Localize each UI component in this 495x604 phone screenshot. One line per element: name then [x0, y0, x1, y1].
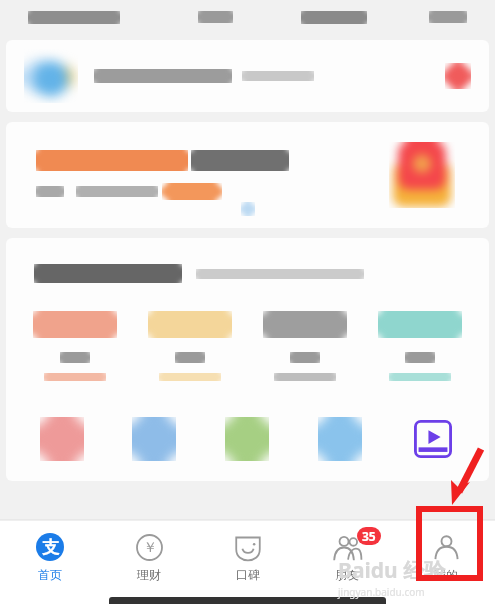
button[interactable] — [108, 411, 200, 467]
button[interactable] — [18, 311, 132, 381]
staticText: 朋友 — [335, 567, 359, 582]
button[interactable] — [247, 311, 362, 381]
staticText: 理财 — [137, 567, 161, 582]
staticText: 首页 — [38, 567, 62, 582]
button[interactable] — [6, 40, 489, 112]
staticText: 我的 — [434, 567, 458, 582]
button[interactable]: ￥ — [99, 520, 198, 592]
staticText: 支 — [42, 537, 59, 558]
staticText: jingyan.baidu.com — [338, 585, 425, 599]
staticText: 35 — [362, 528, 376, 544]
staticText: ￥ — [143, 539, 157, 557]
button[interactable] — [200, 411, 293, 467]
staticText: 口碑 — [236, 567, 260, 582]
button[interactable]: 支 — [0, 520, 99, 592]
button[interactable]: 我的 — [396, 520, 495, 592]
button[interactable] — [293, 411, 386, 467]
button[interactable] — [6, 122, 489, 228]
button[interactable] — [362, 311, 477, 381]
button[interactable] — [16, 411, 108, 467]
button[interactable]: 视频 — [386, 411, 479, 467]
button[interactable]: 口碑 — [198, 520, 297, 592]
button[interactable]: 35 — [297, 520, 396, 592]
button[interactable] — [132, 311, 247, 381]
staticText: Baidu 经验 — [338, 556, 446, 585]
